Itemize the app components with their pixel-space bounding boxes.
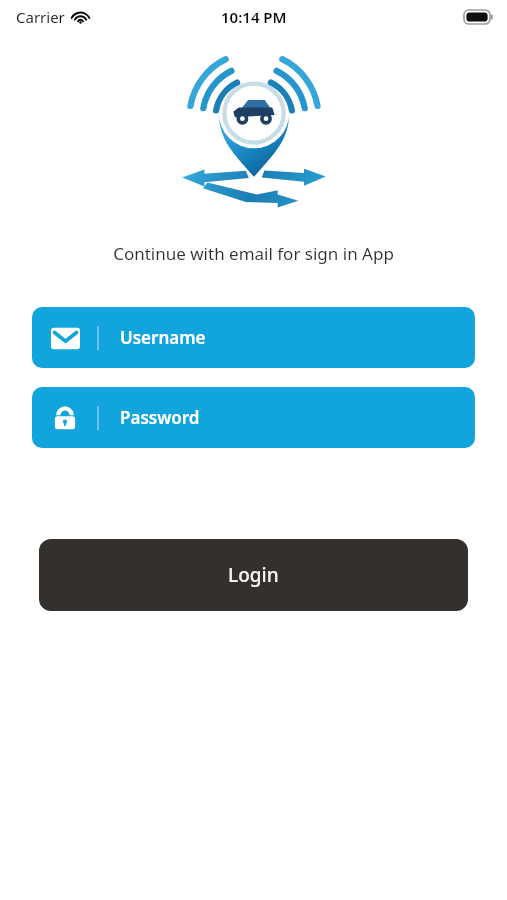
button[interactable]: Email [32,307,475,368]
staticText: Username [120,326,206,349]
button[interactable]: Login [39,539,468,611]
other: Password [50,403,80,433]
staticText: 10:14 PM [221,7,287,27]
staticText: Continue with email for sign in App [113,242,394,265]
button[interactable]: Password [32,387,475,448]
other: Email [50,323,80,353]
staticText: Carrier [16,7,65,27]
staticText: Password [120,406,200,429]
other: Battery [464,10,493,24]
staticText: Login [228,562,279,588]
